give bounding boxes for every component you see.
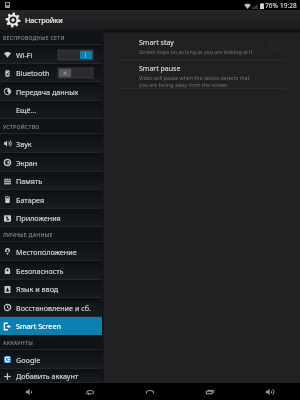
staticText: БЕСПРОВОДНЫЕ СЕТИ — [3, 34, 65, 41]
staticText: 19:28 — [280, 1, 297, 10]
button[interactable]: Bluetooth — [0, 64, 102, 82]
staticText: Screen stays on as long as you are looki… — [139, 48, 253, 55]
staticText: Экран — [16, 158, 38, 168]
button[interactable]: Back — [60, 383, 120, 400]
button[interactable]: Восстановление и сб. — [0, 298, 102, 317]
button[interactable]: Google — [0, 350, 102, 369]
staticText: Smart Screen — [16, 321, 61, 331]
staticText: Безопасность — [16, 266, 64, 276]
button[interactable]: Безопасность — [0, 261, 102, 280]
staticText: Smart pause — [139, 64, 181, 74]
button[interactable]: Recent apps — [180, 383, 240, 400]
staticText: Батарея — [16, 195, 45, 205]
staticText: Память — [16, 176, 43, 186]
button[interactable]: Местоположение — [0, 242, 102, 261]
button[interactable]: Язык и ввод — [0, 280, 102, 298]
staticText: Google — [16, 355, 41, 365]
button[interactable]: Home — [120, 383, 180, 400]
button[interactable]: Ещё... — [0, 101, 102, 119]
button[interactable] — [58, 68, 93, 78]
button[interactable]: Память — [0, 172, 102, 190]
staticText: ЛИЧНЫЕ ДАННЫЕ — [3, 231, 53, 238]
staticText: Звук — [16, 139, 32, 149]
staticText: Местоположение — [16, 247, 77, 257]
button[interactable]: Wi-Fi — [0, 45, 102, 64]
button[interactable]: Добавить аккаунт — [0, 369, 102, 383]
button[interactable]: Volume up — [240, 383, 300, 400]
button[interactable]: Smart stay — [102, 34, 300, 60]
button[interactable]: Батарея — [0, 190, 102, 209]
button[interactable] — [58, 50, 93, 60]
staticText: Wi-Fi — [16, 50, 33, 60]
button[interactable]: Smart Screen — [0, 317, 102, 335]
staticText: Настройки — [25, 15, 63, 25]
staticText: Video will pause when the device detects… — [139, 74, 250, 81]
staticText: Приложения — [16, 213, 61, 223]
staticText: 76% — [265, 1, 278, 10]
button[interactable]: Приложения — [0, 209, 102, 227]
button[interactable]: Передача данных — [0, 82, 102, 101]
staticText: Smart stay — [139, 38, 174, 48]
button[interactable]: Smart pause — [102, 60, 300, 89]
button[interactable]: Экран — [0, 153, 102, 172]
staticText: Bluetooth — [16, 68, 50, 78]
button[interactable]: Звук — [0, 134, 102, 153]
staticText: you are facing away from the screen — [139, 81, 228, 88]
staticText: Восстановление и сб. — [16, 303, 92, 313]
staticText: Передача данных — [16, 87, 79, 97]
staticText: Ещё... — [16, 105, 37, 115]
button[interactable]: Volume down — [0, 383, 60, 400]
staticText: Добавить аккаунт — [16, 371, 79, 381]
staticText: Язык и ввод — [16, 284, 59, 294]
staticText: УСТРОЙСТВО — [3, 123, 40, 130]
staticText: АККАУНТЫ — [3, 339, 33, 346]
